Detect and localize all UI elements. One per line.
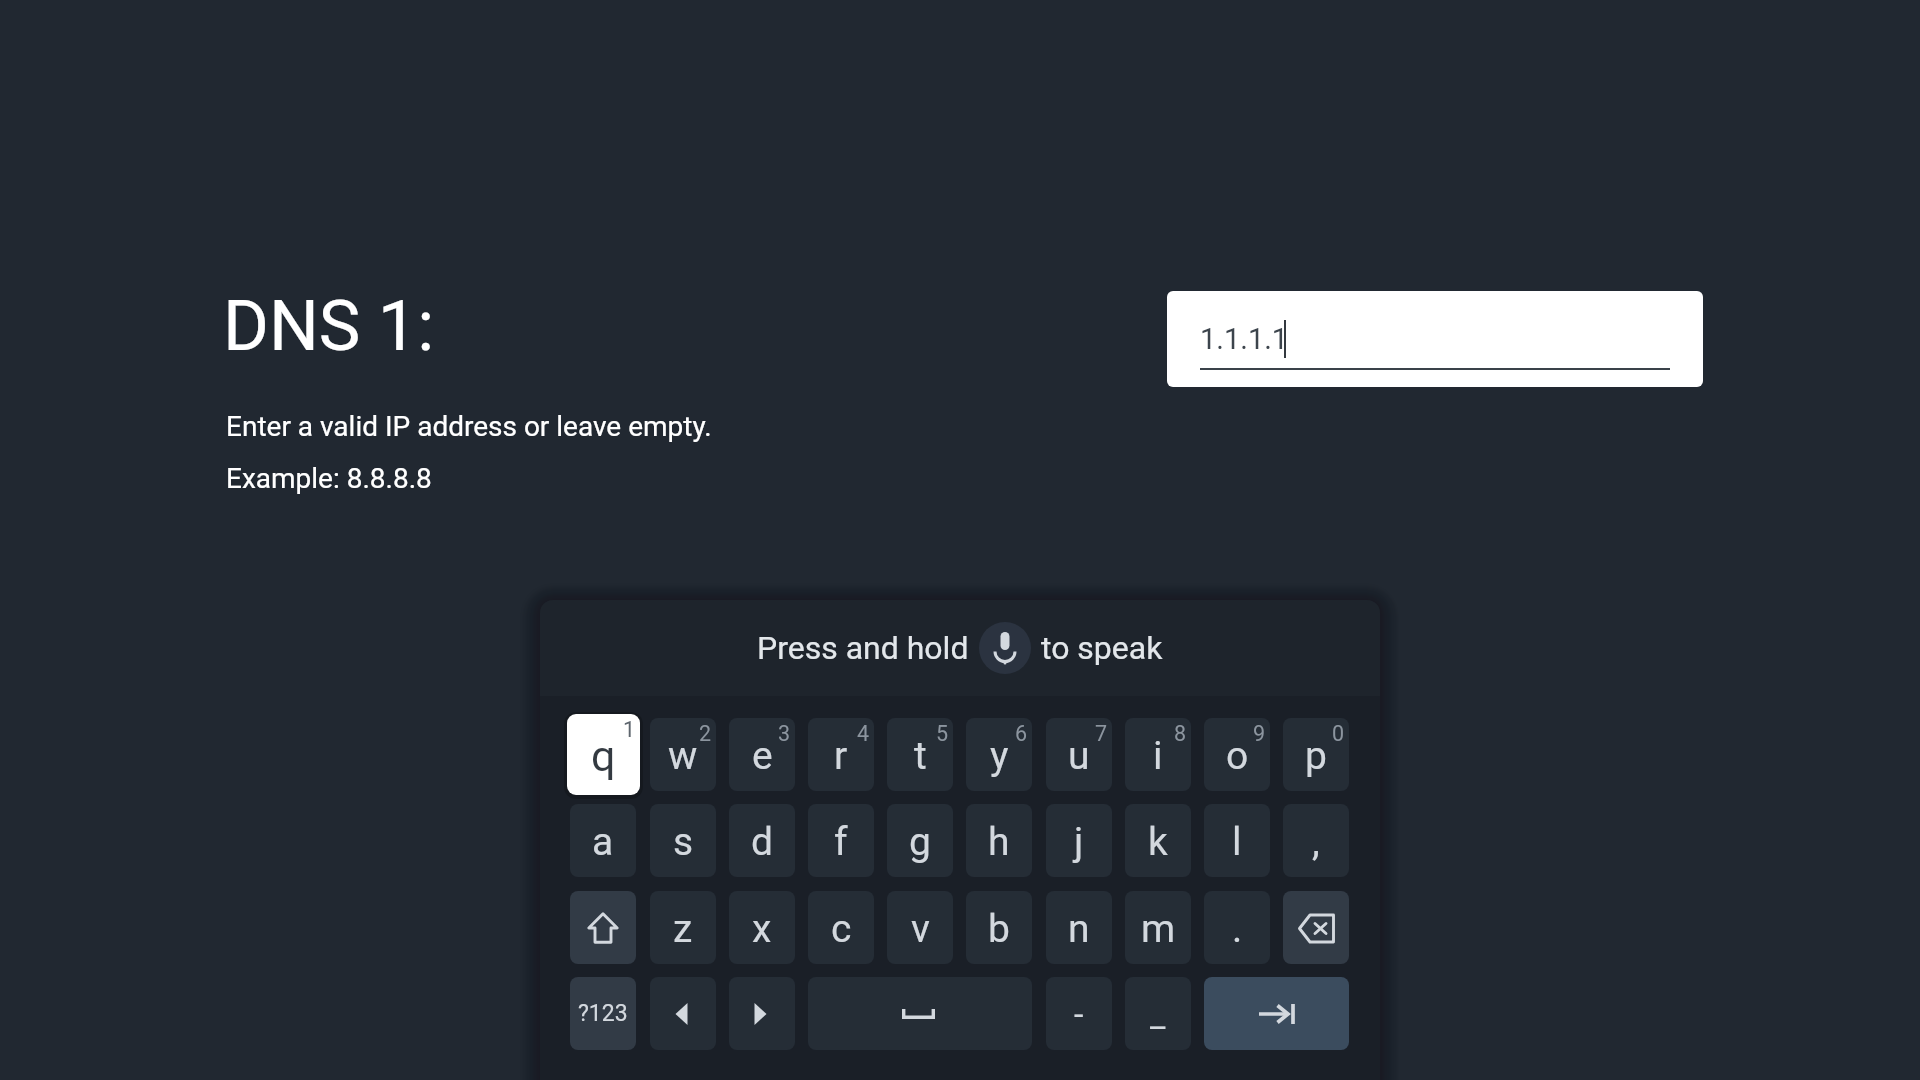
button[interactable]: Backspace [1283, 891, 1349, 964]
button[interactable]: d [729, 804, 795, 877]
button[interactable]: 1.1.1.1 [1167, 291, 1703, 387]
staticText: x [752, 906, 772, 952]
button[interactable]: g [887, 804, 953, 877]
staticText: t [914, 733, 927, 779]
button[interactable]: Enter [1204, 977, 1349, 1050]
staticText: to speak [1041, 629, 1163, 667]
staticText: d [751, 819, 773, 865]
staticText: y [990, 733, 1009, 779]
button[interactable]: _ [1125, 977, 1191, 1050]
staticText: . [1232, 906, 1243, 952]
staticText: Enter a valid IP address or leave empty. [226, 410, 712, 443]
button[interactable]: - [1046, 977, 1112, 1050]
staticText: f [834, 819, 848, 865]
button[interactable]: Move cursor left [650, 977, 716, 1050]
staticText: b [988, 906, 1010, 952]
staticText: 7 [1095, 721, 1108, 746]
button[interactable]: e [729, 718, 795, 791]
staticText: c [831, 906, 852, 952]
staticText: 5 [936, 721, 949, 746]
button[interactable]: q [567, 714, 640, 795]
button[interactable]: i [1125, 718, 1191, 791]
button[interactable]: h [966, 804, 1032, 877]
staticText: k [1148, 819, 1168, 865]
staticText: Press and hold [757, 629, 969, 667]
button[interactable]: n [1046, 891, 1112, 964]
button[interactable]: Voice input [979, 622, 1031, 674]
staticText: 1.1.1.1 [1200, 322, 1289, 356]
staticText: , [1312, 819, 1320, 865]
button[interactable]: Space [808, 977, 1032, 1050]
staticText: 6 [1015, 721, 1028, 746]
staticText: 4 [857, 721, 870, 746]
button[interactable]: Move cursor right [729, 977, 795, 1050]
staticText: n [1068, 906, 1090, 952]
staticText: e [752, 733, 773, 779]
button[interactable]: u [1046, 718, 1112, 791]
staticText: q [591, 731, 616, 781]
staticText: p [1305, 733, 1327, 779]
staticText: s [673, 819, 694, 865]
button[interactable]: Shift [570, 891, 636, 964]
staticText: o [1226, 733, 1249, 779]
staticText: DNS 1: [223, 285, 435, 367]
staticText: 1 [623, 717, 636, 742]
staticText: j [1074, 819, 1084, 865]
staticText: l [1232, 819, 1242, 865]
button[interactable]: l [1204, 804, 1270, 877]
button[interactable]: f [808, 804, 874, 877]
staticText: a [592, 819, 614, 865]
staticText: _ [1150, 995, 1166, 1035]
staticText: m [1141, 906, 1176, 952]
staticText: v [911, 906, 930, 952]
button[interactable]: a [570, 804, 636, 877]
button[interactable]: y [966, 718, 1032, 791]
staticText: u [1068, 733, 1090, 779]
staticText: g [909, 819, 931, 865]
staticText: 9 [1253, 721, 1266, 746]
button[interactable]: z [650, 891, 716, 964]
staticText: r [834, 733, 848, 779]
button[interactable]: v [887, 891, 953, 964]
button[interactable]: ?123 [570, 977, 636, 1050]
staticText: z [673, 906, 693, 952]
button[interactable]: . [1204, 891, 1270, 964]
staticText: ?123 [578, 1000, 628, 1027]
staticText: 3 [778, 721, 791, 746]
button[interactable]: Press and hold [540, 600, 1380, 696]
button[interactable]: t [887, 718, 953, 791]
button[interactable]: b [966, 891, 1032, 964]
staticText: 0 [1332, 721, 1345, 746]
button[interactable]: k [1125, 804, 1191, 877]
button[interactable]: j [1046, 804, 1112, 877]
button[interactable]: x [729, 891, 795, 964]
staticText: - [1074, 994, 1084, 1034]
staticText: 8 [1174, 721, 1187, 746]
button[interactable]: r [808, 718, 874, 791]
staticText: w [668, 733, 698, 779]
staticText: 2 [699, 721, 712, 746]
button[interactable]: c [808, 891, 874, 964]
button[interactable]: s [650, 804, 716, 877]
button[interactable]: , [1283, 804, 1349, 877]
button[interactable]: m [1125, 891, 1191, 964]
staticText: h [988, 819, 1010, 865]
button[interactable]: p [1283, 718, 1349, 791]
button[interactable]: o [1204, 718, 1270, 791]
button[interactable]: w [650, 718, 716, 791]
staticText: Example: 8.8.8.8 [226, 462, 432, 495]
staticText: i [1153, 733, 1163, 779]
